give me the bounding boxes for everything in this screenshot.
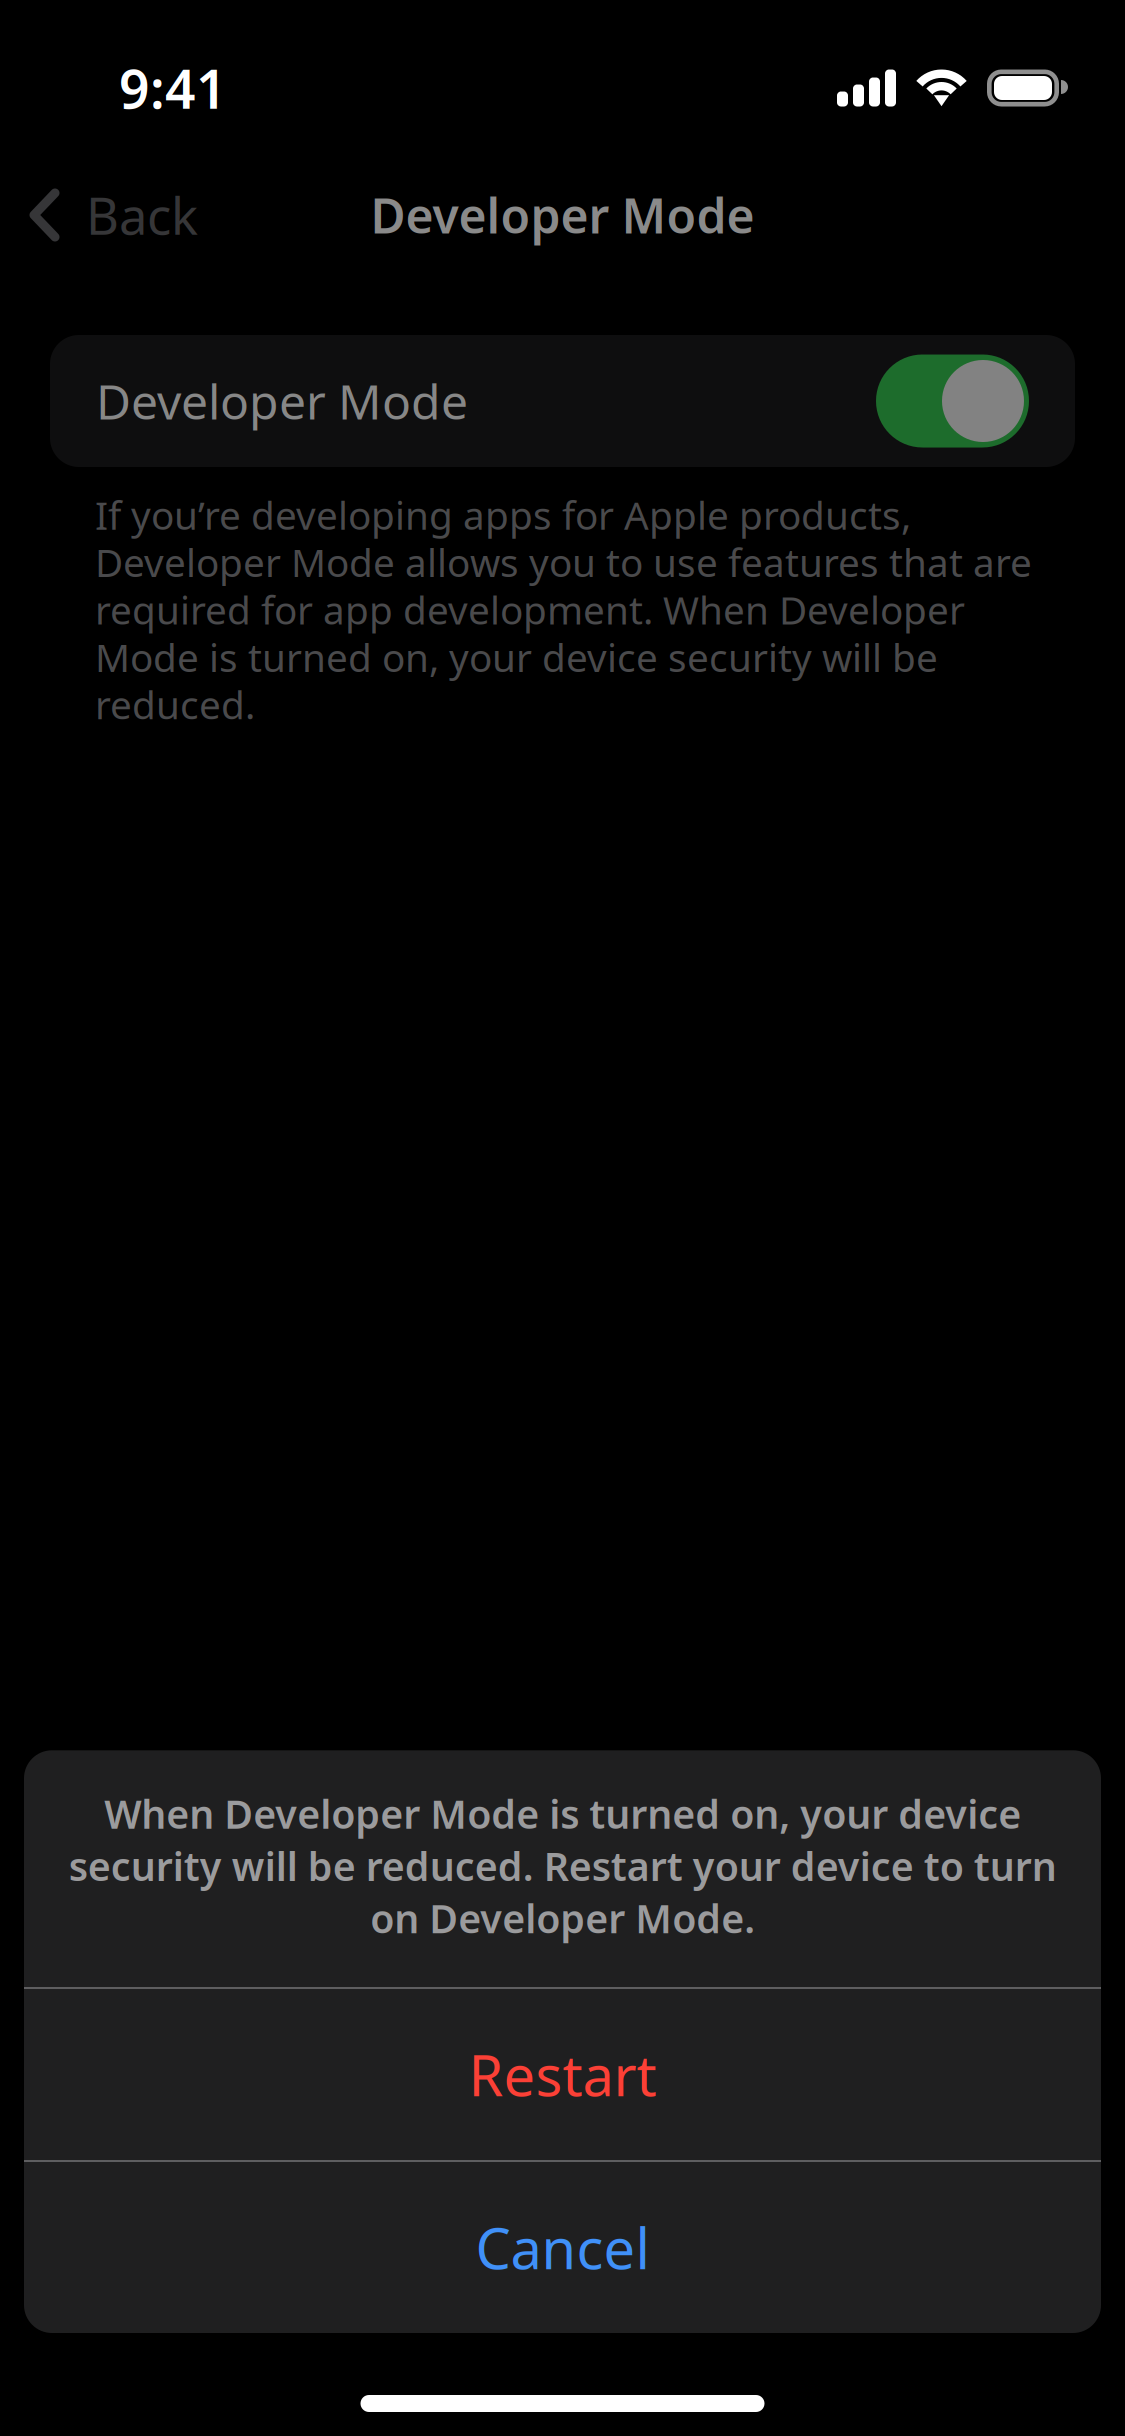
staticText: When Developer Mode is turned on, your d… (68, 1787, 1056, 1944)
staticText: If you’re developing apps for Apple prod… (95, 491, 1032, 728)
staticText: Cancel (475, 2209, 649, 2286)
staticText: Restart (468, 2036, 656, 2113)
staticText: Back (86, 180, 198, 249)
button[interactable]: Restart (24, 1989, 1101, 2160)
staticText: Developer Mode (370, 182, 754, 248)
button[interactable]: Cancel (24, 2162, 1101, 2333)
button[interactable]: Back (0, 150, 222, 280)
staticText: 9:41 (119, 52, 227, 124)
staticText: Developer Mode (96, 368, 468, 434)
button[interactable]: Developer Mode (50, 335, 1075, 467)
